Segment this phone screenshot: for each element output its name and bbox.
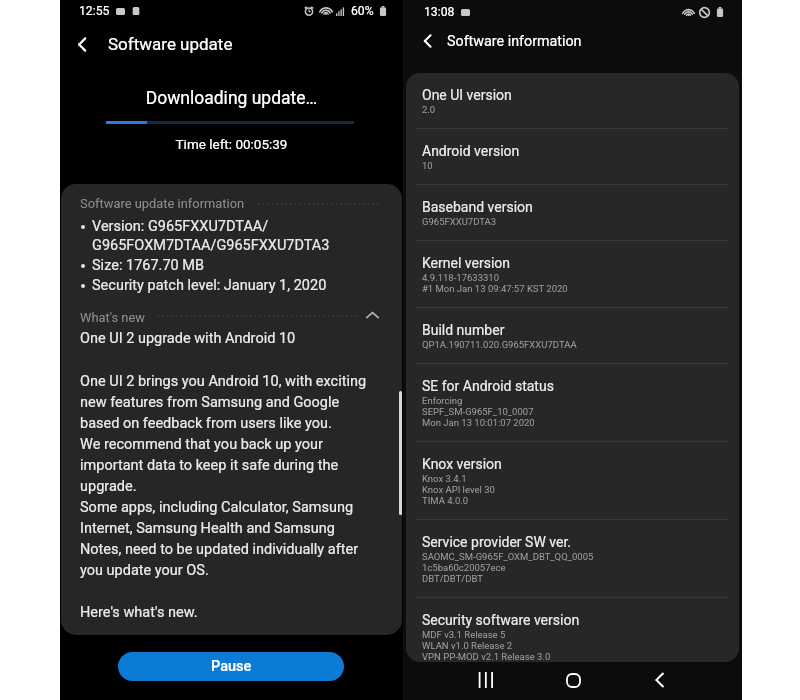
button[interactable]: Pause: [118, 652, 344, 681]
staticText: SE for Android status: [422, 378, 554, 394]
staticText: Version: G965FXXU7DTAA/: [92, 218, 269, 235]
staticText: Downloading update…: [60, 88, 403, 109]
staticText: 13:08: [424, 5, 455, 19]
staticText: Knox API level 30: [422, 484, 495, 495]
staticText: Mon Jan 13 10:01:07 2020: [422, 417, 535, 428]
button[interactable]: Navigate up: [415, 28, 441, 54]
staticText: Software information: [447, 33, 582, 50]
staticText: Service provider SW ver.: [422, 534, 572, 550]
staticText: What's new: [80, 310, 146, 325]
button[interactable]: Service provider SW ver.: [422, 520, 723, 597]
button[interactable]: Knox version: [422, 442, 723, 519]
button[interactable]: Recent apps: [470, 664, 502, 696]
staticText: Security patch level: January 1, 2020: [92, 277, 327, 294]
staticText: Build number: [422, 322, 505, 338]
staticText: 2.0: [422, 104, 436, 115]
staticText: Knox 3.4.1: [422, 473, 467, 484]
button[interactable]: What's new: [61, 306, 402, 328]
staticText: G965FOXM7DTAA/G965FXXU7DTA3: [92, 237, 330, 254]
staticText: 1c5ba60c20057ece: [422, 562, 506, 573]
staticText: One UI 2 upgrade with Android 10: [80, 330, 296, 347]
button[interactable]: Navigate up: [69, 31, 96, 58]
staticText: #1 Mon Jan 13 09:47:57 KST 2020: [422, 283, 568, 294]
staticText: SAOMC_SM-G965F_OXM_DBT_QQ_0005: [422, 551, 594, 562]
staticText: 60%: [351, 4, 374, 18]
staticText: WLAN v1.0 Release 2: [422, 640, 513, 651]
staticText: Enforcing: [422, 395, 463, 406]
button[interactable]: SE for Android status: [422, 364, 723, 441]
staticText: VPN PP-MOD v2.1 Release 3.0: [422, 651, 551, 662]
staticText: Time left: 00:05:39: [60, 136, 403, 152]
button[interactable]: Android version: [422, 129, 723, 184]
button[interactable]: Home: [557, 664, 589, 696]
staticText: Software update information: [80, 196, 245, 211]
staticText: 4.9.118-17633310: [422, 272, 500, 283]
button[interactable]: Security software version: [422, 598, 723, 662]
staticText: SEPF_SM-G965F_10_0007: [422, 406, 534, 417]
staticText: G965FXXU7DTA3: [422, 216, 497, 227]
staticText: QP1A.190711.020.G965FXXU7DTAA: [422, 339, 577, 350]
staticText: 10: [422, 160, 433, 171]
staticText: MDF v3.1 Release 5: [422, 629, 506, 640]
button[interactable]: Back: [644, 664, 676, 696]
staticText: Kernel version: [422, 255, 511, 271]
staticText: Android version: [422, 143, 520, 159]
staticText: 12:55: [79, 4, 110, 18]
staticText: Size: 1767.70 MB: [92, 257, 205, 274]
button[interactable]: Build number: [422, 308, 723, 363]
staticText: Baseband version: [422, 199, 533, 215]
staticText: DBT/DBT/DBT: [422, 573, 483, 584]
staticText: Knox version: [422, 456, 502, 472]
staticText: Security software version: [422, 612, 580, 628]
staticText: Software update: [108, 34, 233, 54]
staticText: One UI 2 brings you Android 10, with exc…: [80, 373, 367, 621]
button[interactable]: Kernel version: [422, 241, 723, 307]
staticText: Pause: [211, 658, 252, 675]
staticText: One UI version: [422, 87, 512, 103]
button[interactable]: Baseband version: [422, 185, 723, 240]
button[interactable]: One UI version: [422, 73, 723, 128]
staticText: TIMA 4.0.0: [422, 495, 469, 506]
